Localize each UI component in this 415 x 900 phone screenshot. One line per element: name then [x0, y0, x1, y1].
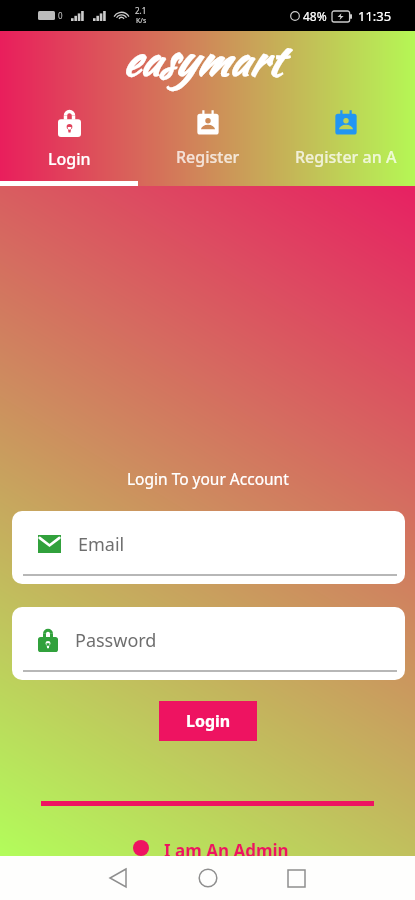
staticText: I am An Admin — [164, 839, 289, 856]
staticText: Email — [78, 532, 125, 557]
button[interactable]: Register an A — [277, 97, 415, 181]
button[interactable]: I am An Admin — [127, 839, 289, 856]
staticText: 11:35 — [358, 7, 392, 25]
staticText: Login — [48, 148, 91, 170]
staticText: 2.1 — [135, 5, 147, 16]
staticText: easymart — [122, 28, 282, 90]
staticText: Login — [186, 710, 231, 732]
staticText: 0 — [58, 10, 63, 21]
button[interactable]: Password — [12, 607, 405, 680]
button[interactable]: Login — [159, 701, 257, 741]
staticText: Register an A — [295, 146, 397, 168]
button[interactable]: Register — [139, 97, 277, 181]
staticText: 48% — [303, 8, 327, 24]
button[interactable]: Login — [0, 97, 139, 181]
staticText: Password — [75, 628, 157, 653]
button[interactable]: Recent apps — [274, 856, 318, 900]
button[interactable]: Email — [12, 511, 405, 584]
staticText: Login To your Account — [127, 468, 289, 489]
staticText: Register — [176, 146, 240, 168]
staticText: K/s — [136, 16, 147, 26]
button[interactable]: Home — [186, 856, 230, 900]
button[interactable]: Back — [96, 856, 140, 900]
